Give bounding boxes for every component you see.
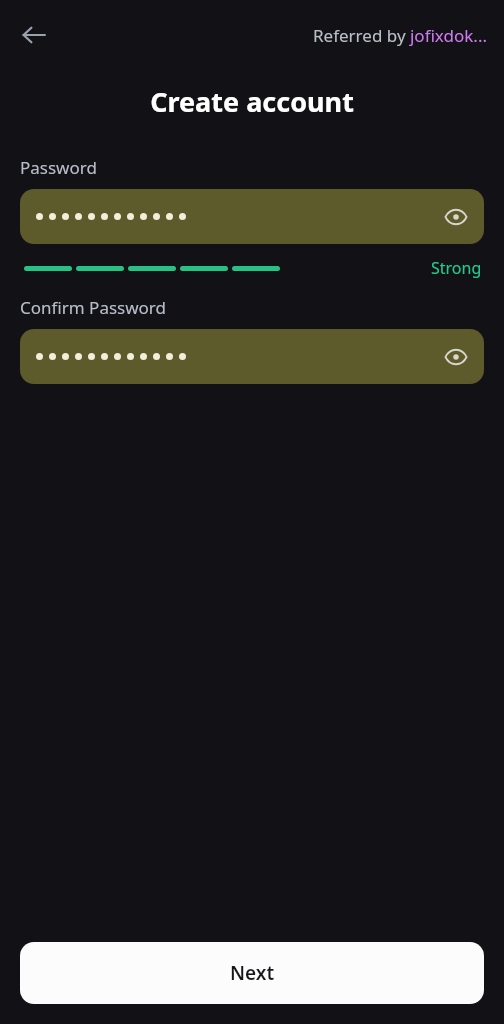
staticText: Create account — [150, 83, 354, 120]
button[interactable]: Show password — [20, 189, 484, 244]
staticText: Password — [20, 156, 97, 179]
button[interactable]: Show password — [20, 329, 484, 384]
button[interactable]: Referred by jofixdok... — [311, 20, 490, 51]
button[interactable]: Next — [20, 942, 484, 1004]
button[interactable]: Show password — [436, 197, 476, 237]
button[interactable]: Back — [10, 11, 58, 59]
staticText: Confirm Password — [20, 296, 166, 319]
staticText: Next — [230, 960, 275, 986]
staticText: Strong — [431, 257, 482, 279]
staticText: Referred by jofixdok... — [313, 24, 488, 47]
button[interactable]: Show password — [436, 337, 476, 377]
